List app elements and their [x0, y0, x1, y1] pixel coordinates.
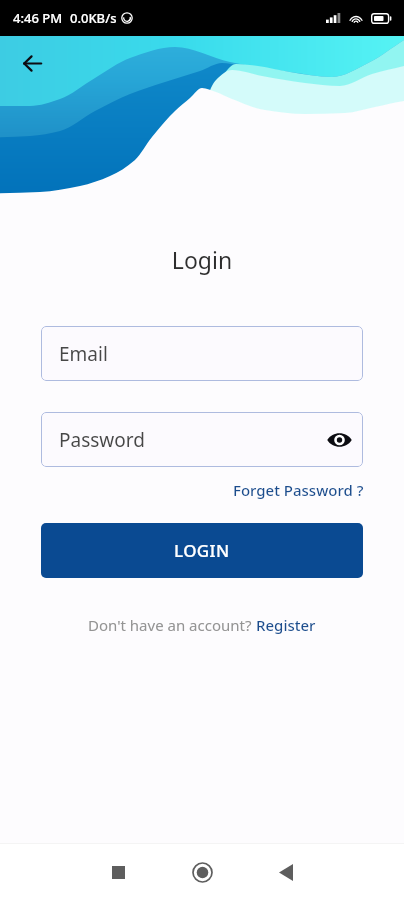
- staticText: Password: [59, 427, 145, 453]
- staticText: Login: [0, 244, 404, 275]
- button[interactable]: Back: [14, 45, 50, 81]
- button[interactable]: Register: [256, 615, 316, 635]
- button[interactable]: Password: [41, 412, 363, 467]
- staticText: Don't have an account?: [88, 615, 256, 635]
- button[interactable]: LOGIN: [41, 523, 363, 578]
- staticText: 0.0KB/s: [70, 9, 117, 27]
- staticText: 4:46 PM: [13, 9, 63, 27]
- button[interactable]: Show password: [321, 422, 357, 458]
- button[interactable]: Email: [41, 326, 363, 381]
- button[interactable]: Home: [181, 851, 223, 893]
- staticText: LOGIN: [174, 539, 230, 562]
- button[interactable]: Back: [265, 851, 307, 893]
- button[interactable]: Recents: [97, 851, 139, 893]
- staticText: Email: [59, 341, 108, 367]
- button[interactable]: Forget Password ?: [223, 477, 404, 503]
